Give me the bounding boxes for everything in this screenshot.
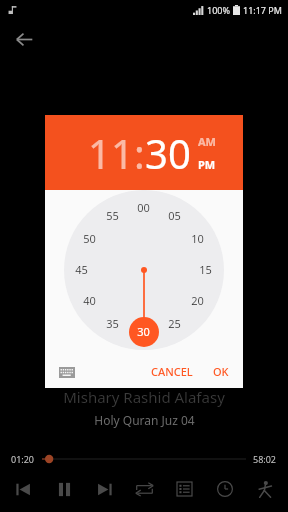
button[interactable]: OK: [208, 358, 234, 385]
button[interactable]: 50: [83, 231, 96, 246]
button[interactable]: Previous track: [6, 472, 40, 506]
button[interactable]: Back: [7, 22, 41, 56]
button[interactable]: 10: [191, 231, 204, 246]
button[interactable]: 45: [75, 262, 88, 277]
button[interactable]: 30: [145, 126, 191, 180]
staticText: 11:17 PM: [243, 4, 282, 16]
button[interactable]: 15: [199, 262, 212, 277]
staticText: CANCEL: [151, 364, 193, 379]
button[interactable]: Sleep timer: [208, 472, 242, 506]
button[interactable]: 00: [137, 200, 150, 215]
button[interactable]: 25: [168, 316, 181, 331]
staticText: Holy Quran Juz 04: [94, 412, 195, 428]
button[interactable]: Next track: [87, 472, 121, 506]
button[interactable]: Pause: [47, 472, 81, 506]
button[interactable]: Switch to keyboard input: [54, 359, 80, 385]
staticText: 01:20: [11, 453, 35, 465]
button[interactable]: 05: [168, 208, 181, 223]
staticText: Mishary Rashid Alafasy: [63, 387, 225, 407]
button[interactable]: 11: [88, 126, 134, 180]
button[interactable]: CANCEL: [146, 358, 198, 385]
button[interactable]: 40: [83, 293, 96, 308]
staticText: OK: [213, 364, 229, 379]
button[interactable]: Playlist: [167, 472, 201, 506]
button[interactable]: Walk mode: [248, 472, 282, 506]
button[interactable]: PM: [198, 157, 216, 172]
button[interactable]: 20: [191, 293, 204, 308]
staticText: :: [134, 126, 145, 180]
button[interactable]: 35: [106, 316, 119, 331]
button[interactable]: 30: [137, 324, 150, 339]
staticText: 100%: [207, 4, 230, 16]
button[interactable]: AM: [198, 134, 216, 149]
button[interactable]: Repeat mode: [127, 472, 161, 506]
button[interactable]: 55: [106, 208, 119, 223]
staticText: 58:02: [253, 453, 277, 465]
